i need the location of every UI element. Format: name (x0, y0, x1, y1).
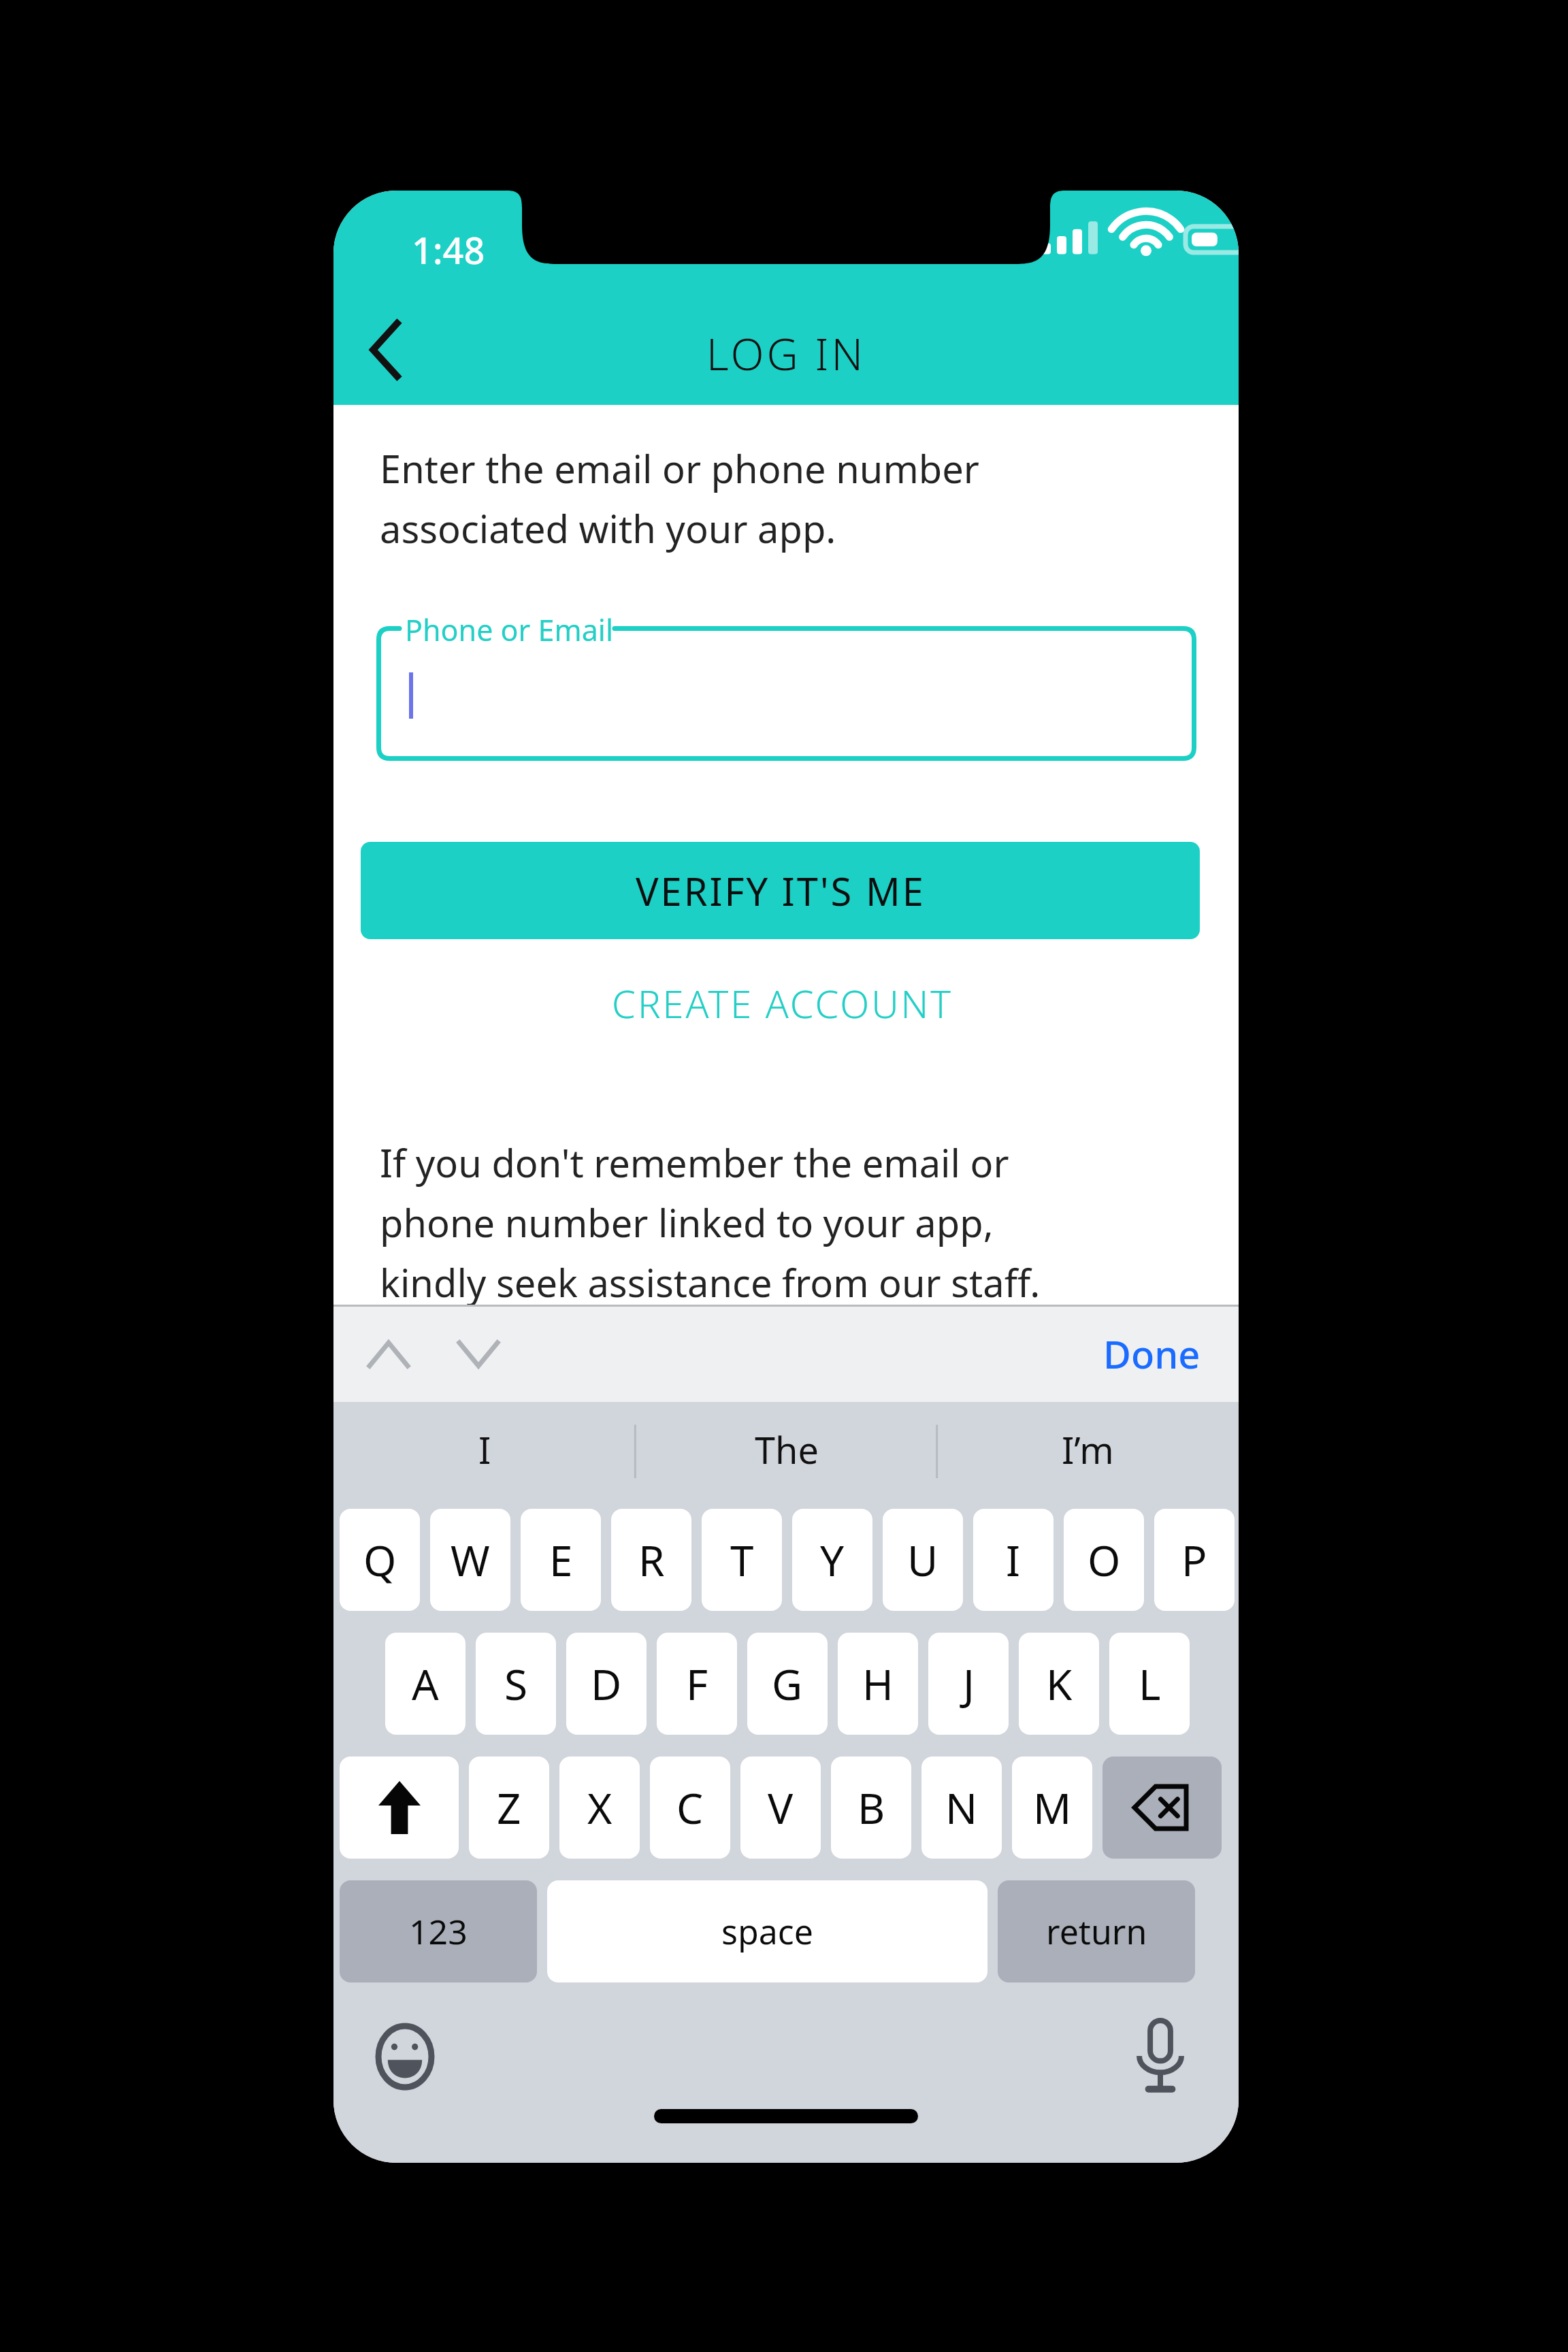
staticText: L (1139, 1655, 1161, 1712)
button[interactable]: W (430, 1509, 510, 1611)
button[interactable]: CREATE ACCOUNT (565, 962, 1000, 1045)
button[interactable]: I (333, 1402, 636, 1497)
button[interactable]: Previous field (359, 1327, 418, 1382)
staticText: X (587, 1779, 612, 1836)
button[interactable]: C (650, 1757, 730, 1859)
staticText: If you don't remember the email or phone… (380, 1137, 1101, 1308)
staticText: The (755, 1424, 819, 1475)
button[interactable]: Shift (340, 1757, 459, 1859)
button[interactable]: 123 (340, 1880, 537, 1982)
staticText: F (686, 1655, 708, 1712)
staticText: O (1088, 1531, 1121, 1588)
staticText: P (1181, 1531, 1207, 1588)
button[interactable]: K (1019, 1633, 1099, 1735)
staticText: A (412, 1655, 439, 1712)
button[interactable]: E (521, 1509, 601, 1611)
staticText: H (862, 1655, 894, 1712)
button[interactable]: Done (1094, 1317, 1210, 1390)
button[interactable]: O (1064, 1509, 1144, 1611)
button[interactable]: R (611, 1509, 691, 1611)
button[interactable]: space (547, 1880, 987, 1982)
button[interactable]: Z (469, 1757, 549, 1859)
staticText: B (857, 1779, 885, 1836)
staticText: return (1046, 1908, 1147, 1955)
button[interactable]: Backspace (1102, 1757, 1222, 1859)
staticText: I (478, 1424, 491, 1475)
staticText: Done (1103, 1328, 1200, 1379)
button[interactable]: X (559, 1757, 640, 1859)
staticText: I (1006, 1531, 1021, 1588)
staticText: CREATE ACCOUNT (612, 977, 953, 1029)
staticText: Q (363, 1531, 397, 1588)
staticText: Y (820, 1531, 845, 1588)
button[interactable]: Q (340, 1509, 420, 1611)
staticText: G (772, 1655, 803, 1712)
button[interactable]: V (740, 1757, 821, 1859)
button[interactable]: The (636, 1402, 937, 1497)
button[interactable]: T (702, 1509, 782, 1611)
button[interactable]: P (1154, 1509, 1235, 1611)
button[interactable]: Phone or Email (376, 626, 1196, 761)
staticText: VERIFY IT'S ME (636, 865, 926, 917)
button[interactable]: U (883, 1509, 963, 1611)
staticText: 1:48 (412, 225, 485, 275)
staticText: M (1033, 1779, 1072, 1836)
staticText: Z (497, 1779, 521, 1836)
button[interactable]: L (1109, 1633, 1190, 1735)
staticText: S (504, 1655, 528, 1712)
staticText: space (721, 1908, 813, 1955)
staticText: K (1046, 1655, 1073, 1712)
staticText: T (730, 1531, 754, 1588)
staticText: D (591, 1655, 622, 1712)
button[interactable]: N (921, 1757, 1002, 1859)
staticText: Phone or Email (405, 610, 613, 650)
staticText: W (451, 1531, 490, 1588)
button[interactable]: I (973, 1509, 1053, 1611)
staticText: R (638, 1531, 665, 1588)
button[interactable]: Y (792, 1509, 872, 1611)
button[interactable]: M (1012, 1757, 1092, 1859)
staticText: LOG IN (333, 324, 1239, 383)
button[interactable]: return (998, 1880, 1195, 1982)
button[interactable]: D (566, 1633, 647, 1735)
staticText: 123 (409, 1908, 468, 1955)
staticText: J (963, 1655, 975, 1712)
button[interactable]: G (747, 1633, 828, 1735)
staticText: I’m (1062, 1424, 1114, 1475)
staticText: U (907, 1531, 938, 1588)
staticText: Enter the email or phone number associat… (380, 442, 1132, 554)
staticText: C (676, 1779, 704, 1836)
staticText: N (945, 1779, 978, 1836)
button[interactable]: Voice input (1116, 2012, 1205, 2101)
button[interactable]: F (657, 1633, 737, 1735)
button[interactable]: J (928, 1633, 1009, 1735)
button[interactable]: A (385, 1633, 465, 1735)
staticText: V (768, 1779, 794, 1836)
button[interactable]: B (831, 1757, 911, 1859)
button[interactable]: H (838, 1633, 918, 1735)
button[interactable]: I’m (937, 1402, 1239, 1497)
button[interactable]: VERIFY IT'S ME (361, 842, 1200, 939)
button[interactable]: Emoji (361, 2012, 449, 2101)
button[interactable]: Next field (449, 1327, 508, 1382)
button[interactable]: Back (348, 312, 425, 388)
button[interactable]: S (476, 1633, 556, 1735)
staticText: E (549, 1531, 573, 1588)
